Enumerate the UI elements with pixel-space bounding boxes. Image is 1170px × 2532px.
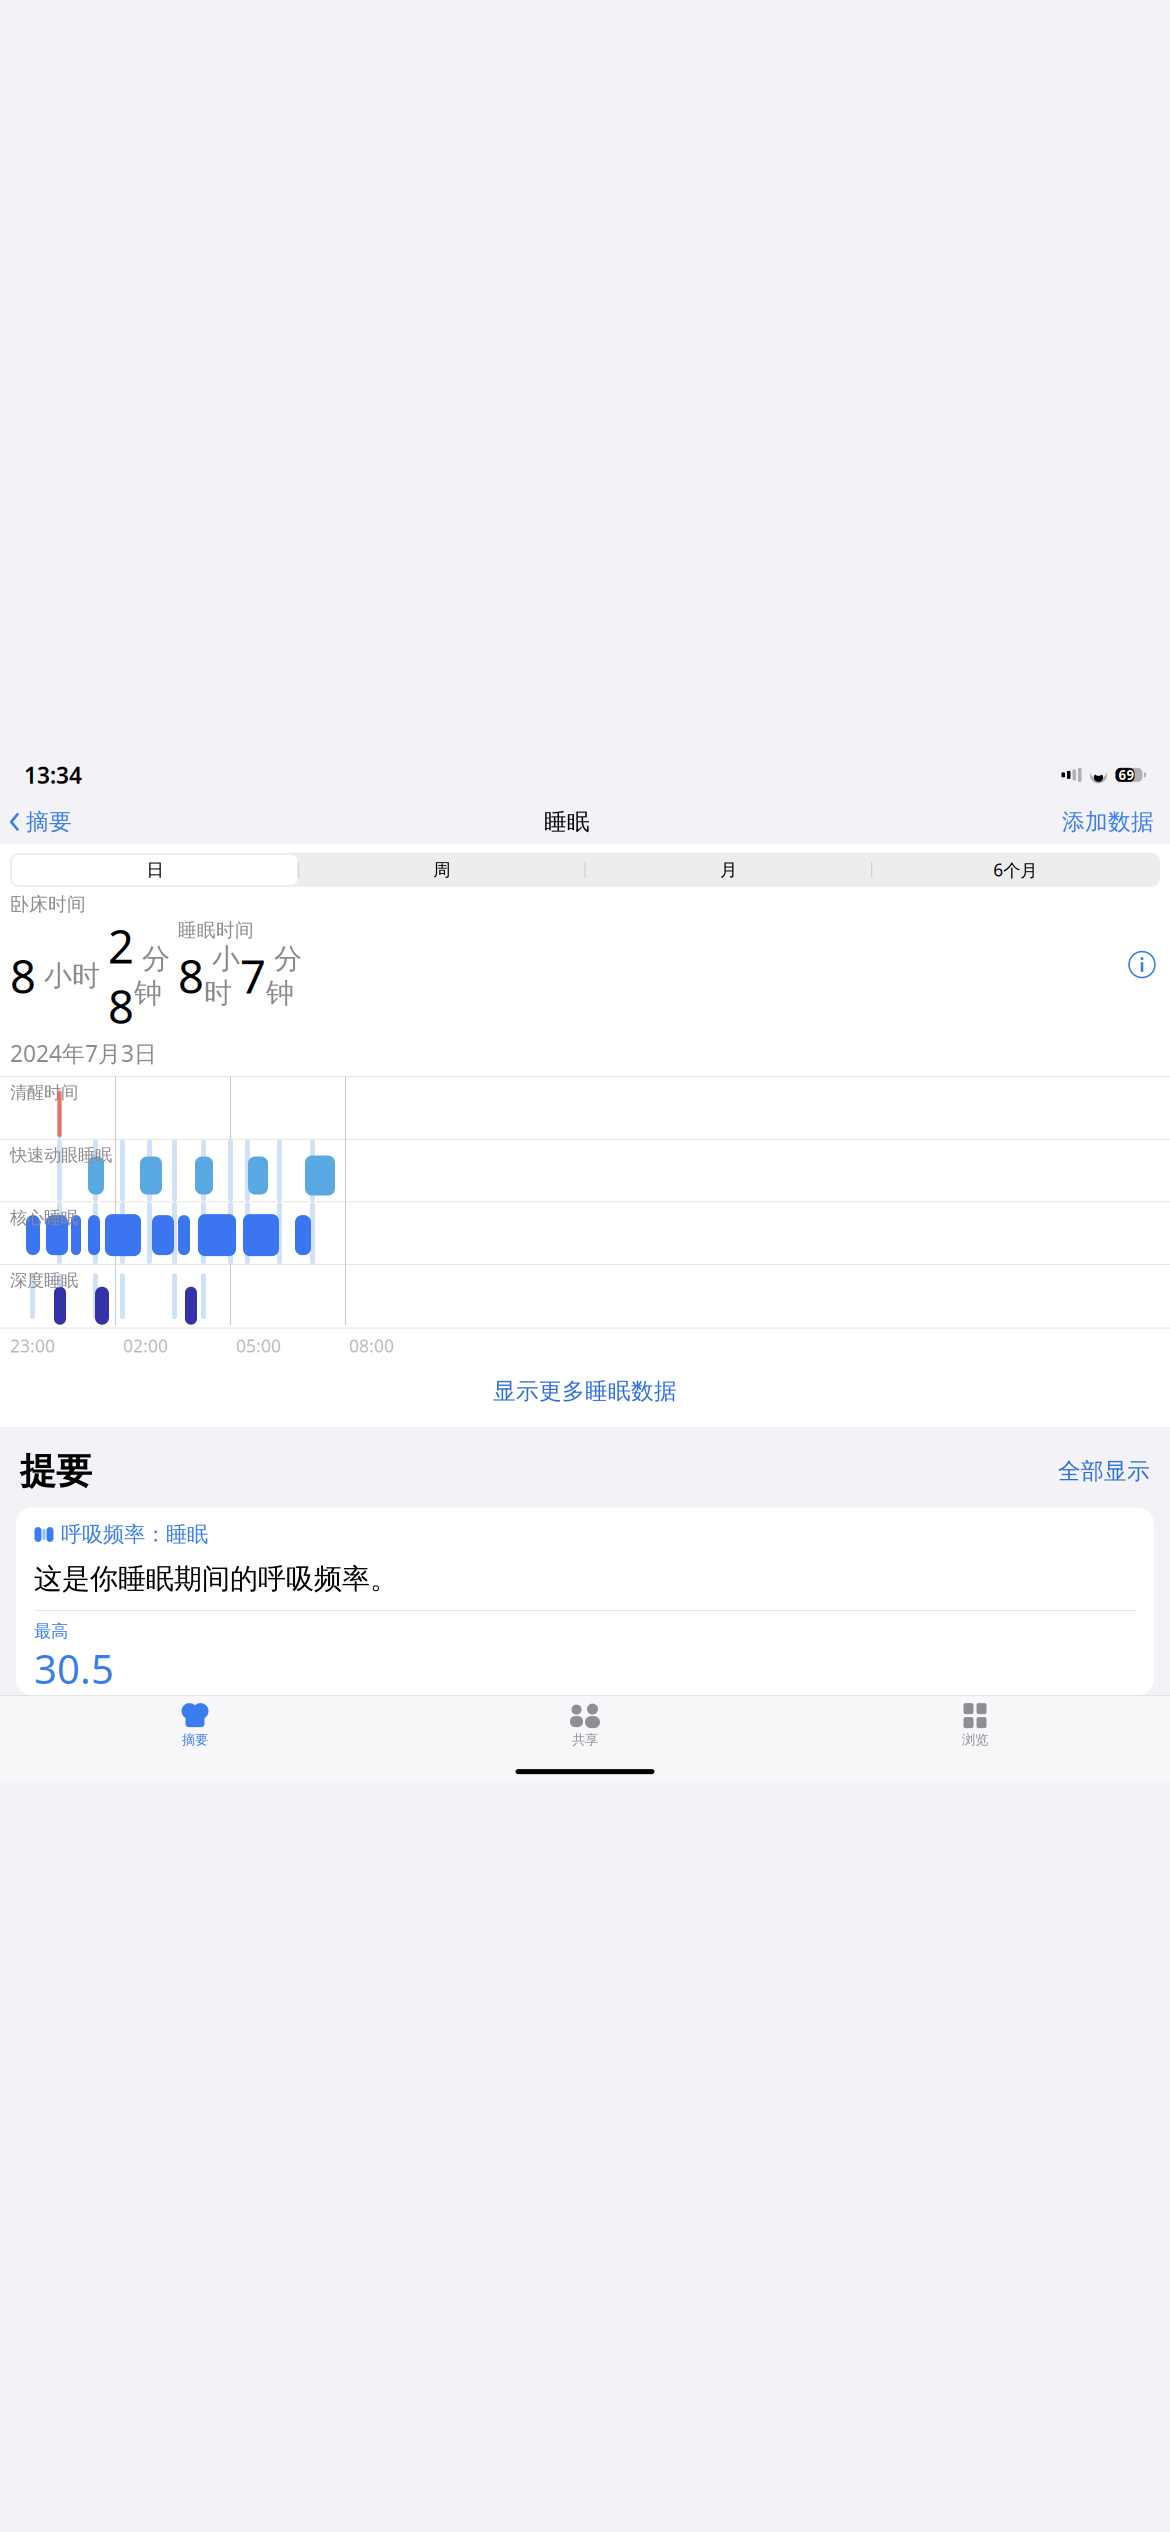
staticText: 2024年7月3日 (10, 1038, 157, 1068)
staticText: 02:00 (123, 1334, 168, 1357)
staticText: 分钟 (266, 942, 302, 1010)
staticText: 6个月 (993, 858, 1037, 881)
button[interactable]: 6个月 (872, 855, 1158, 885)
button[interactable]: 共享 (390, 1696, 780, 1752)
button[interactable]: 日 (12, 855, 298, 885)
staticText: 13:34 (24, 760, 82, 790)
staticText: 最高 (34, 1621, 68, 1642)
button[interactable]: 月 (585, 855, 871, 885)
button[interactable]: 显示更多睡眠数据 (0, 1363, 1170, 1419)
button[interactable]: 浏览 (780, 1696, 1170, 1752)
staticText: 8 (10, 946, 36, 1006)
button[interactable]: 周 (299, 855, 585, 885)
button[interactable]: 摘要 (0, 1696, 390, 1752)
staticText: 快速动眼睡眠 (10, 1144, 112, 1166)
button[interactable]: 呼吸频率：睡眠 (16, 1507, 1154, 1695)
staticText: 7 (240, 946, 266, 1006)
staticText: 69 (1118, 766, 1134, 784)
staticText: 日 (146, 859, 163, 880)
staticText: 显示更多睡眠数据 (493, 1377, 677, 1405)
staticText: 28 (108, 916, 134, 1036)
button[interactable]: 摘要 (0, 802, 72, 842)
staticText: 这是你睡眠期间的呼吸频率。 (34, 1562, 398, 1596)
staticText: 睡眠 (544, 808, 590, 836)
staticText: 摘要 (182, 1732, 208, 1748)
staticText: 提要 (20, 1449, 92, 1493)
staticText: 月 (720, 859, 737, 880)
staticText: 小时 (204, 942, 240, 1010)
staticText: 8 (178, 946, 204, 1006)
staticText: 共享 (572, 1732, 598, 1748)
staticText: 睡眠时间 (178, 919, 254, 942)
button[interactable]: 全部显示 (1058, 1457, 1150, 1485)
staticText: 添加数据 (1062, 808, 1154, 836)
staticText: 周 (433, 859, 450, 880)
button[interactable]: 添加数据 (1062, 802, 1170, 842)
staticText: 05:00 (236, 1334, 281, 1357)
staticText: 23:00 (10, 1334, 55, 1357)
staticText: 摘要 (26, 808, 72, 836)
staticText: 清醒时间 (10, 1082, 78, 1103)
staticText: 呼吸频率：睡眠 (61, 1521, 208, 1548)
staticText: 30.5 (34, 1642, 114, 1695)
staticText: 核心睡眠 (10, 1207, 78, 1228)
staticText: 卧床时间 (10, 893, 86, 916)
staticText: 小时 (36, 959, 108, 993)
staticText: 分钟 (134, 942, 170, 1010)
staticText: 全部显示 (1058, 1457, 1150, 1485)
staticText: 08:00 (349, 1334, 394, 1357)
staticText: 深度睡眠 (10, 1270, 78, 1291)
button[interactable]: 更多信息 (1128, 951, 1170, 979)
staticText: 浏览 (962, 1732, 988, 1748)
